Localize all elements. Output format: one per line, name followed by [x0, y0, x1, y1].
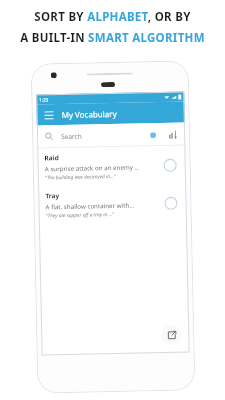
staticText: A BUILT-IN SMART ALGORITHM: [20, 30, 205, 46]
button[interactable]: Open navigation menu: [41, 108, 56, 122]
staticText: Raid: [44, 153, 60, 162]
button[interactable]: Filter: [146, 128, 159, 141]
staticText: My Vocabulary: [61, 108, 118, 120]
staticText: Search: [61, 132, 82, 141]
button[interactable]: Sort: [166, 128, 179, 141]
staticText: "They ate supper off a tray in ...": [46, 211, 115, 219]
staticText: A surprise attack on an enemy ...: [45, 162, 140, 172]
button[interactable]: Mark Raid as learned: [160, 156, 179, 174]
button[interactable]: Add new word: [161, 325, 181, 345]
staticText: Tray: [45, 191, 59, 200]
button[interactable]: Tray: [38, 183, 187, 225]
staticText: "The building was destroyed in...": [45, 173, 116, 181]
staticText: 1:23: [39, 96, 48, 102]
button[interactable]: Mark Tray as learned: [161, 194, 180, 212]
staticText: SORT BY ALPHABET, OR BY: [34, 9, 191, 25]
button[interactable]: Search: [43, 130, 55, 142]
button[interactable]: Raid: [37, 145, 186, 187]
staticText: A flat, shallow container with...: [45, 200, 135, 210]
